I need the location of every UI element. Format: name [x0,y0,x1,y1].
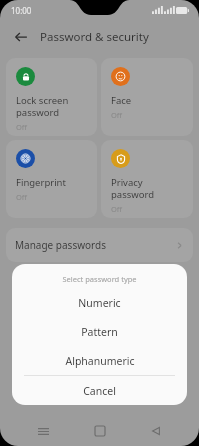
button[interactable]: Alphanumeric [12,346,187,375]
staticText: Manage passwords [15,238,175,252]
button[interactable]: Privacy password [101,140,193,218]
button[interactable]: Pattern [12,317,187,346]
staticText: Cancel [83,384,116,398]
button[interactable]: Numeric [12,288,187,317]
button[interactable]: Lock screen password [6,58,97,136]
button[interactable]: Recent apps [30,418,56,444]
staticText: Off [16,122,28,130]
button[interactable]: Home [87,418,113,444]
button[interactable]: Face [101,58,193,136]
staticText: Face [111,94,132,107]
button[interactable]: Back [11,27,31,47]
staticText: Fingerprint [16,176,66,189]
staticText: Off [111,110,123,120]
staticText: 10:00 [11,5,32,16]
staticText: Password & security [40,29,149,45]
button[interactable]: Back [143,418,169,444]
button[interactable]: Fingerprint [6,140,97,218]
staticText: Select password type [12,274,187,284]
staticText: Alphanumeric [65,354,135,368]
button[interactable]: Cancel [12,376,187,405]
staticText: Off [111,204,123,212]
staticText: Off [16,192,28,202]
staticText: Numeric [78,296,121,310]
button[interactable]: Manage passwords [6,228,193,262]
staticText: Privacy password [111,176,155,201]
staticText: Lock screen password [16,94,69,119]
staticText: Pattern [81,325,118,339]
